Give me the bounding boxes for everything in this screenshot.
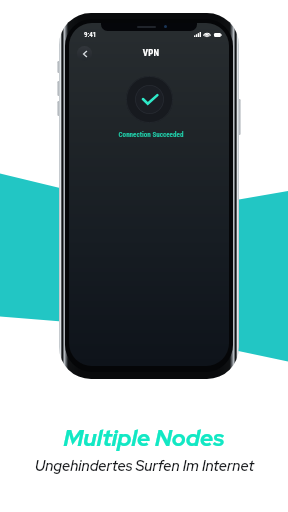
staticText: VPN bbox=[71, 48, 229, 59]
button[interactable]: Back bbox=[77, 46, 92, 61]
staticText: 9:41 bbox=[84, 31, 97, 39]
staticText: Multiple Nodes bbox=[63, 423, 225, 453]
staticText: Ungehindertes Surfen Im Internet bbox=[35, 456, 254, 475]
staticText: Connection Succeeded bbox=[71, 130, 229, 138]
